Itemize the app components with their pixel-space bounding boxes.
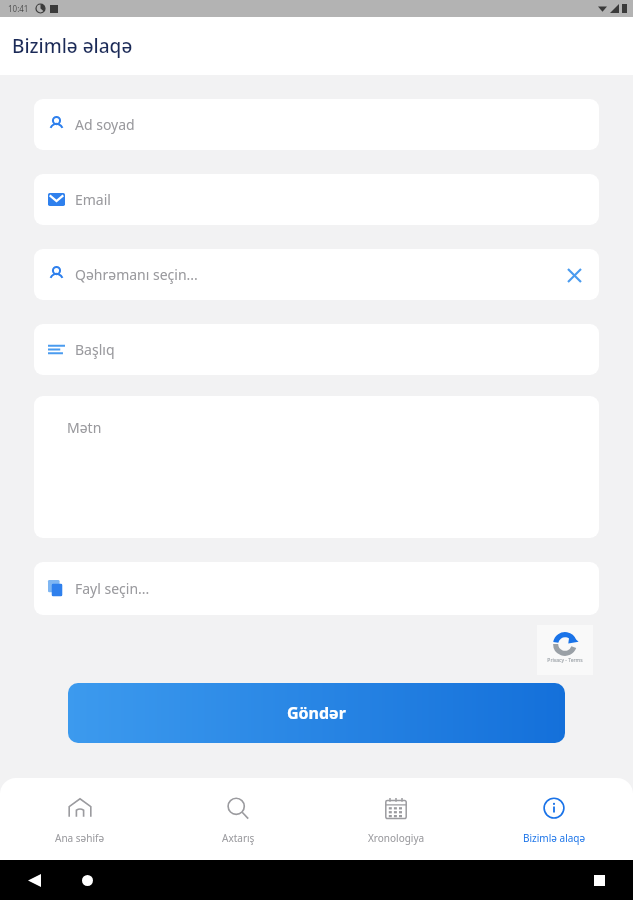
staticText: Bizimlə alaqə [523,831,586,845]
button[interactable]: Göndər [68,683,565,743]
other: Back [28,874,41,887]
button[interactable]: Qəhrəmanı seçin... [34,249,599,300]
button[interactable]: Ana səhifə [0,778,159,860]
staticText: Göndər [287,702,346,724]
staticText: Fayl seçin... [75,579,150,598]
staticText: Başlıq [75,340,115,359]
staticText: Email [75,190,111,209]
staticText: Mətn [67,418,102,437]
button[interactable]: Axtarış [159,778,317,860]
staticText: Ana səhifə [55,831,105,845]
other: Home [82,875,93,886]
button[interactable]: Xronologiya [317,778,475,860]
button[interactable]: Mətn [34,396,599,538]
staticText: Xronologiya [368,831,425,845]
staticText: Axtarış [222,831,255,845]
button[interactable]: reCAPTCHA [537,625,593,675]
staticText: Privacy - Terms [547,657,583,664]
button[interactable]: Başlıq [34,324,599,375]
staticText: Qəhrəmanı seçin... [75,265,198,284]
staticText: Ad soyad [75,115,135,134]
button[interactable]: Ad soyad [34,99,599,150]
staticText: 10:41 [8,3,29,14]
button[interactable]: Bizimlə alaqə [475,778,633,860]
staticText: Bizimlə əlaqə [12,33,133,59]
button[interactable]: Clear [563,264,585,286]
button[interactable]: Email [34,174,599,225]
button[interactable]: Fayl seçin... [34,562,599,615]
